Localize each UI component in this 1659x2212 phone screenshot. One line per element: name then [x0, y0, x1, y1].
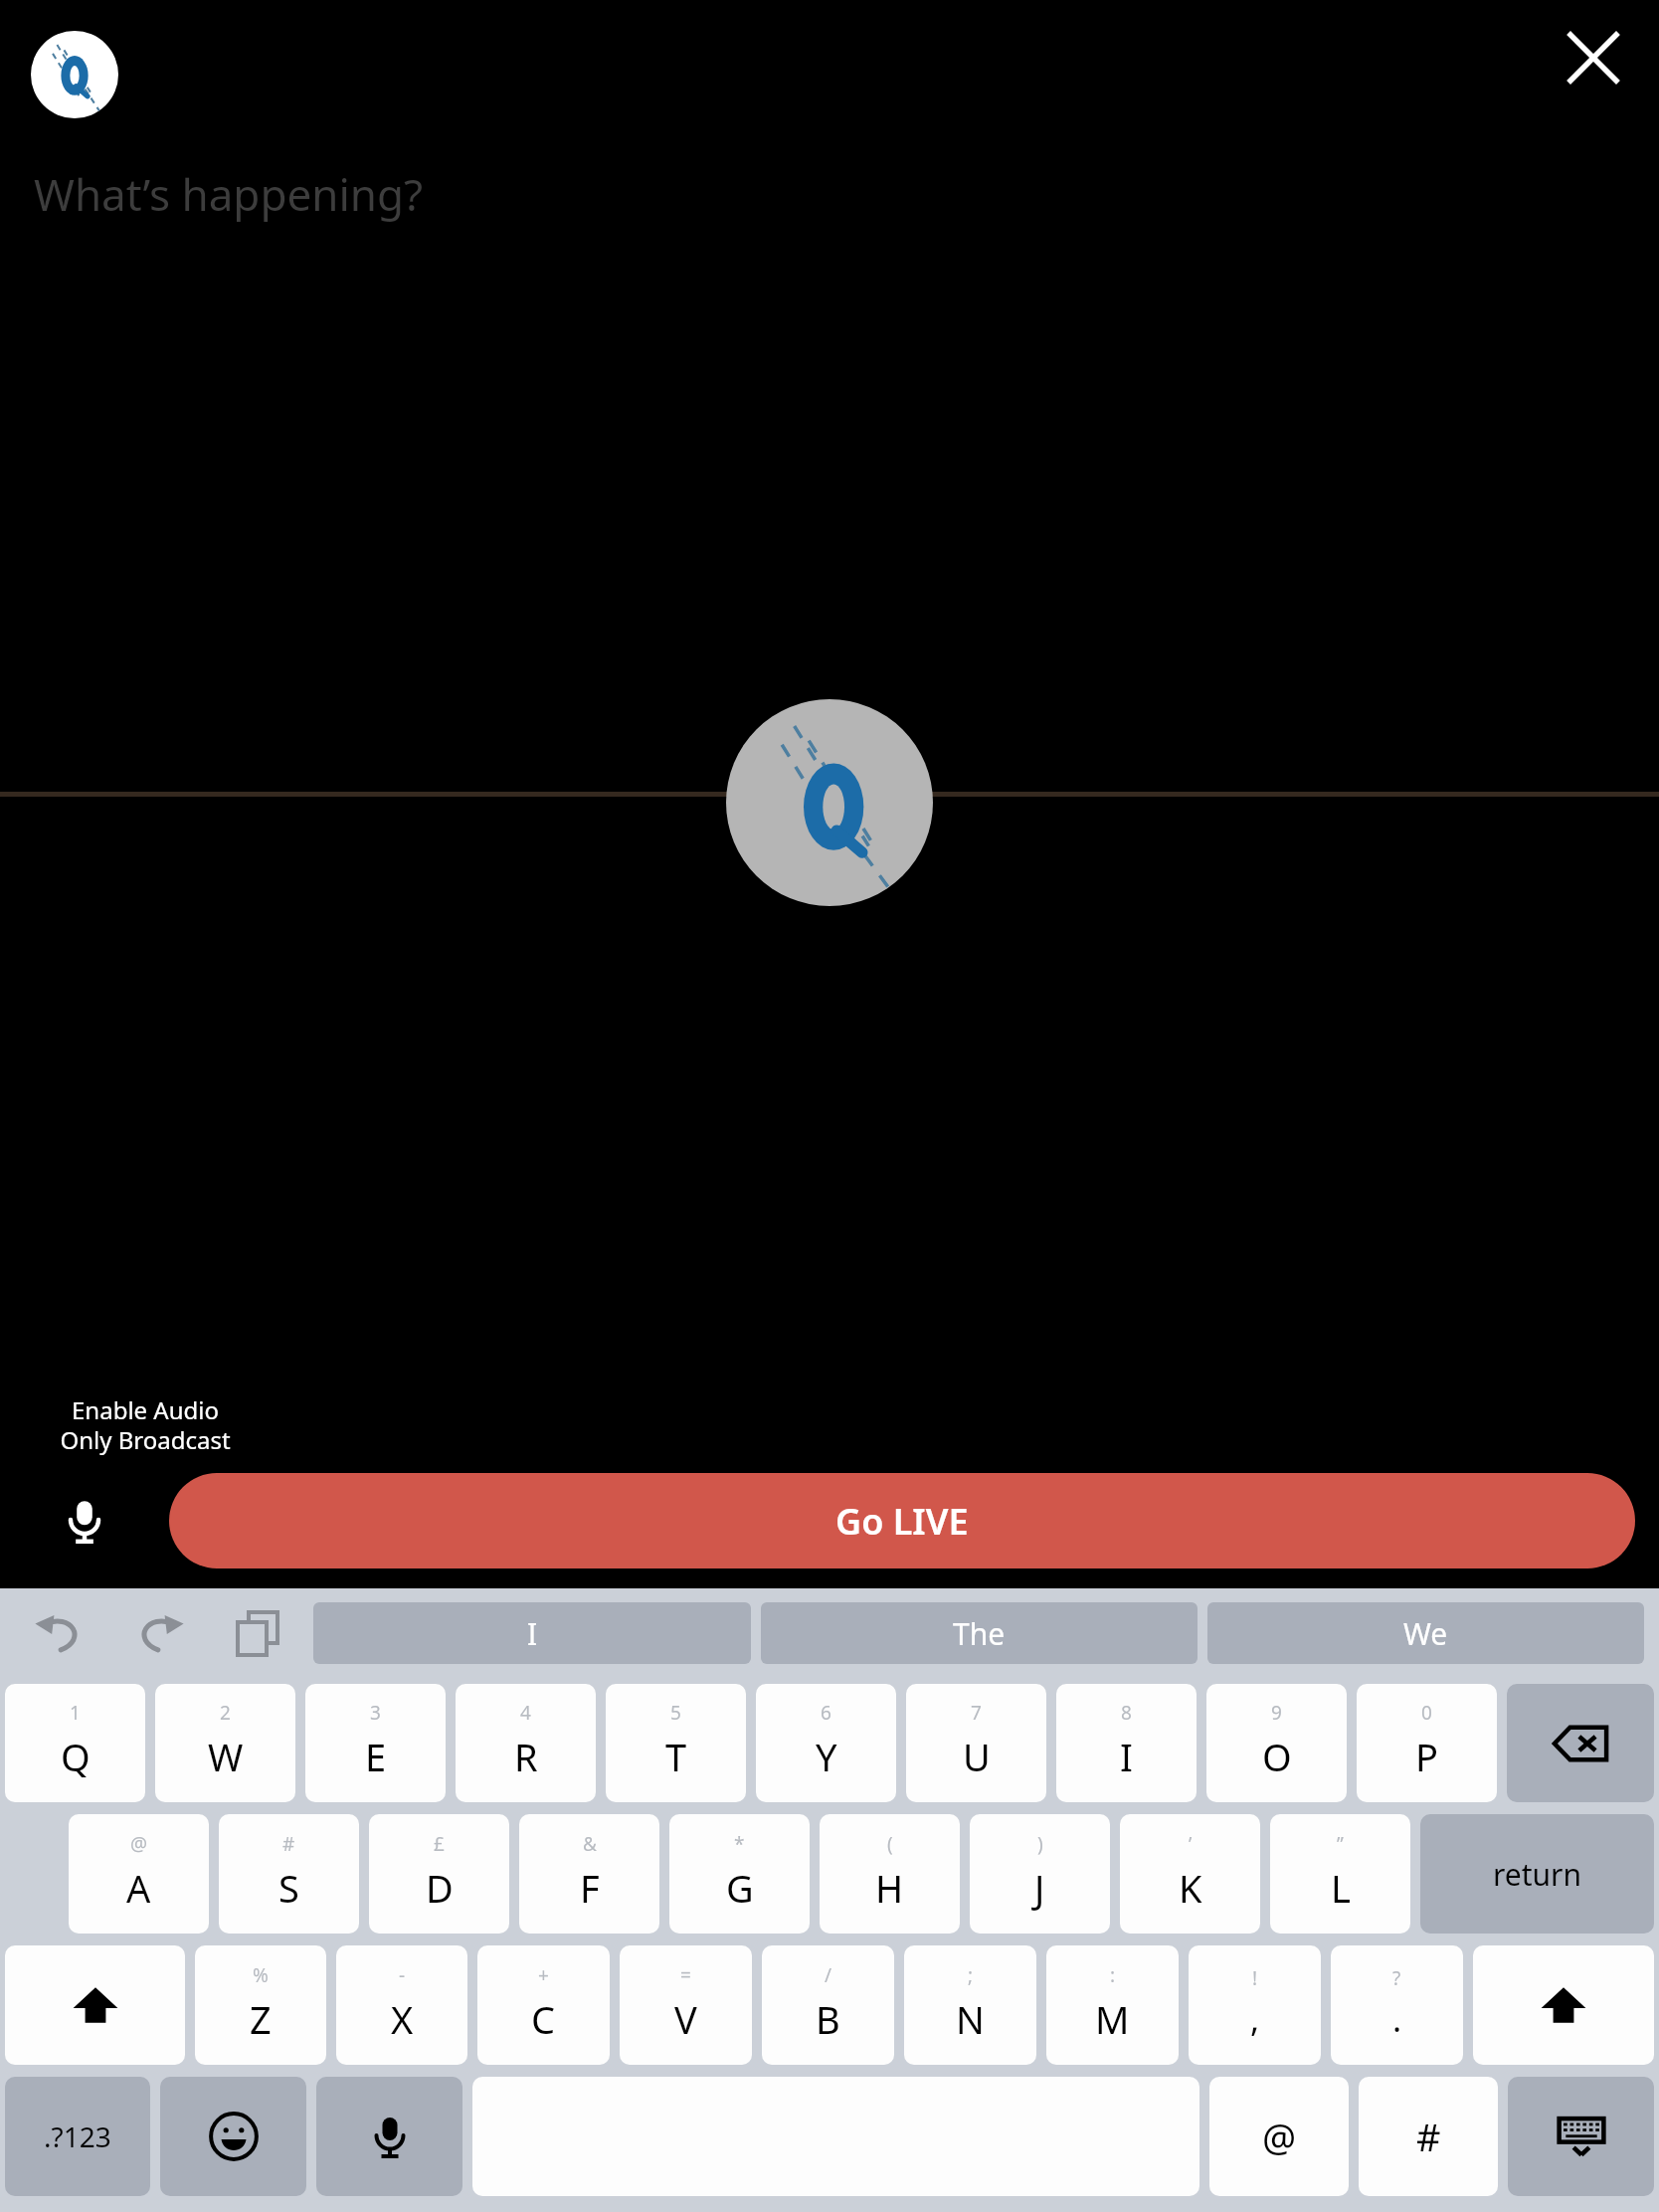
- button[interactable]: ”: [1270, 1814, 1410, 1934]
- staticText: U: [963, 1731, 991, 1782]
- other: Hide keyboard: [1554, 2109, 1609, 2164]
- staticText: @: [1262, 2111, 1297, 2162]
- staticText: #: [1416, 2111, 1441, 2162]
- staticText: K: [1179, 1862, 1202, 1914]
- staticText: L: [1331, 1862, 1351, 1914]
- button[interactable]: ;: [904, 1945, 1036, 2065]
- other: Shift: [1538, 1979, 1589, 2031]
- staticText: C: [531, 1993, 556, 2045]
- button[interactable]: =: [620, 1945, 752, 2065]
- staticText: O: [1262, 1731, 1292, 1782]
- button[interactable]: Voice input: [316, 2077, 462, 2196]
- staticText: 1: [70, 1700, 81, 1726]
- button[interactable]: #: [219, 1814, 359, 1934]
- button[interactable]: Shift: [5, 1945, 185, 2065]
- button[interactable]: 6: [756, 1684, 896, 1802]
- button[interactable]: I: [313, 1602, 751, 1664]
- button[interactable]: @: [69, 1814, 209, 1934]
- button[interactable]: The: [761, 1602, 1198, 1664]
- button[interactable]: #: [1359, 2077, 1498, 2196]
- staticText: E: [365, 1731, 387, 1782]
- button[interactable]: Profile: [31, 31, 118, 118]
- button[interactable]: 3: [305, 1684, 446, 1802]
- staticText: T: [665, 1731, 687, 1782]
- other: Voice input: [365, 2112, 415, 2161]
- button[interactable]: 2: [155, 1684, 295, 1802]
- staticText: B: [816, 1993, 840, 2045]
- staticText: 7: [971, 1700, 982, 1726]
- button[interactable]: /: [762, 1945, 894, 2065]
- button[interactable]: :: [1046, 1945, 1179, 2065]
- button[interactable]: Hide keyboard: [1508, 2077, 1654, 2196]
- button[interactable]: We: [1207, 1602, 1644, 1664]
- staticText: S: [278, 1862, 299, 1914]
- other: Emoji: [208, 2111, 260, 2162]
- staticText: The: [953, 1613, 1006, 1654]
- staticText: :: [1110, 1962, 1116, 1988]
- button[interactable]: 5: [606, 1684, 746, 1802]
- button[interactable]: %: [195, 1945, 326, 2065]
- staticText: .?123: [44, 2118, 111, 2155]
- staticText: 4: [520, 1700, 531, 1726]
- staticText: +: [538, 1962, 549, 1988]
- button[interactable]: *: [669, 1814, 810, 1934]
- staticText: H: [875, 1862, 904, 1914]
- button[interactable]: Toggle microphone: [0, 1473, 169, 1568]
- staticText: Z: [250, 1993, 272, 2045]
- staticText: ): [1037, 1831, 1043, 1857]
- staticText: Y: [816, 1731, 837, 1782]
- staticText: F: [580, 1862, 600, 1914]
- staticText: A: [126, 1862, 151, 1914]
- staticText: ”: [1337, 1831, 1344, 1857]
- staticText: I: [1120, 1731, 1133, 1782]
- staticText: 3: [370, 1700, 381, 1726]
- button[interactable]: 8: [1056, 1684, 1197, 1802]
- staticText: /: [825, 1962, 832, 1988]
- staticText: ,: [1250, 1996, 1260, 2042]
- button[interactable]: return: [1420, 1814, 1654, 1934]
- button[interactable]: -: [336, 1945, 467, 2065]
- staticText: What’s happening?: [34, 164, 424, 224]
- button[interactable]: 7: [906, 1684, 1046, 1802]
- staticText: Go LIVE: [835, 1497, 969, 1546]
- button[interactable]: ): [970, 1814, 1110, 1934]
- staticText: =: [680, 1962, 691, 1988]
- staticText: return: [1493, 1854, 1582, 1895]
- staticText: £: [434, 1831, 445, 1857]
- button[interactable]: Paste: [209, 1588, 308, 1678]
- button[interactable]: ?: [1331, 1945, 1463, 2065]
- button[interactable]: ’: [1120, 1814, 1260, 1934]
- button[interactable]: Go LIVE: [169, 1473, 1635, 1568]
- button[interactable]: .?123: [5, 2077, 150, 2196]
- button[interactable]: 0: [1357, 1684, 1497, 1802]
- button[interactable]: Backspace: [1507, 1684, 1654, 1802]
- button[interactable]: Emoji: [160, 2077, 306, 2196]
- staticText: *: [734, 1831, 745, 1857]
- staticText: -: [399, 1962, 406, 1988]
- button[interactable]: 1: [5, 1684, 145, 1802]
- staticText: @: [130, 1831, 148, 1857]
- button[interactable]: £: [369, 1814, 509, 1934]
- staticText: V: [674, 1993, 697, 2045]
- button[interactable]: 9: [1206, 1684, 1347, 1802]
- button[interactable]: 4: [456, 1684, 596, 1802]
- button[interactable]: Redo: [109, 1588, 209, 1678]
- staticText: 0: [1421, 1700, 1432, 1726]
- staticText: M: [1095, 1993, 1130, 2045]
- staticText: ?: [1392, 1965, 1401, 1991]
- staticText: #: [282, 1831, 295, 1857]
- staticText: (: [887, 1831, 893, 1857]
- button[interactable]: (: [820, 1814, 960, 1934]
- button[interactable]: +: [477, 1945, 610, 2065]
- button[interactable]: Close: [1548, 12, 1639, 103]
- staticText: 2: [220, 1700, 231, 1726]
- button[interactable]: !: [1189, 1945, 1321, 2065]
- button[interactable]: &: [519, 1814, 659, 1934]
- staticText: 6: [821, 1700, 831, 1726]
- staticText: !: [1252, 1965, 1258, 1991]
- button[interactable]: Shift: [1473, 1945, 1654, 2065]
- staticText: %: [253, 1962, 269, 1988]
- button[interactable]: Undo: [10, 1588, 109, 1678]
- button[interactable]: @: [1209, 2077, 1349, 2196]
